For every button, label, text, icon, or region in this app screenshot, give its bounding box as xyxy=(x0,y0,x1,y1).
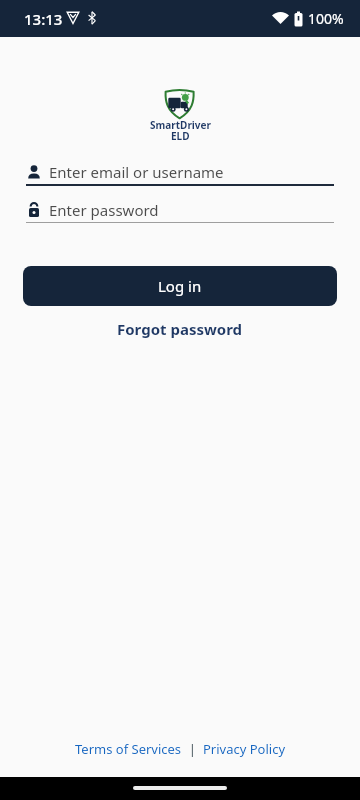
staticText: Enter password xyxy=(49,200,159,220)
staticText: Log in xyxy=(158,276,202,296)
button[interactable]: Forgot password xyxy=(117,319,243,339)
staticText: Enter email or username xyxy=(49,162,224,182)
button[interactable]: Privacy Policy xyxy=(203,740,286,758)
staticText: ELD xyxy=(171,129,190,143)
staticText: 13:13 xyxy=(24,9,63,29)
button[interactable]: Log in xyxy=(23,266,337,306)
staticText: | xyxy=(182,740,203,758)
staticText: SmartDriver xyxy=(150,118,211,132)
button[interactable]: Terms of Services xyxy=(75,740,182,758)
staticText: 100% xyxy=(308,9,344,28)
